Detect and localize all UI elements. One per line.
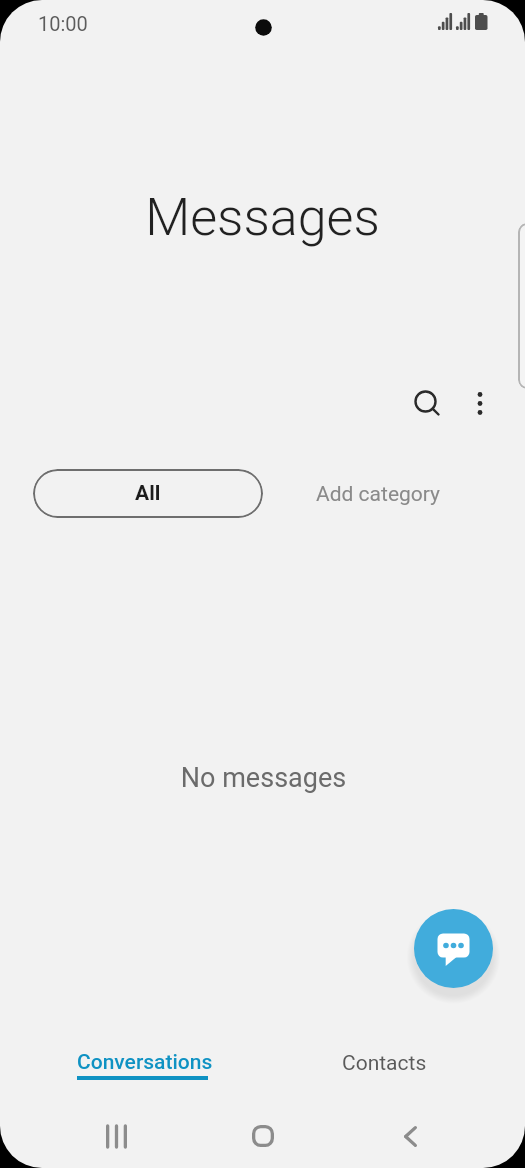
button[interactable]: More options	[456, 379, 504, 427]
button[interactable]: Search	[403, 379, 451, 427]
button[interactable]: Contacts	[285, 1030, 480, 1096]
staticText: All	[135, 481, 161, 506]
button[interactable]: Home	[228, 1106, 298, 1166]
button[interactable]: Conversations	[12, 1030, 274, 1096]
staticText: Contacts	[342, 1051, 427, 1076]
staticText: Conversations	[77, 1050, 213, 1075]
button[interactable]: Edge panel handle	[518, 223, 525, 389]
staticText: Add category	[316, 482, 441, 507]
button[interactable]: Back	[375, 1106, 445, 1166]
button[interactable]: Add category	[296, 470, 461, 519]
button[interactable]: All	[33, 469, 263, 518]
staticText: No messages	[1, 762, 525, 794]
staticText: Messages	[0, 187, 525, 248]
staticText: 10:00	[38, 12, 88, 35]
button[interactable]: Start new conversation	[414, 909, 493, 988]
button[interactable]: Recent apps	[81, 1106, 151, 1166]
